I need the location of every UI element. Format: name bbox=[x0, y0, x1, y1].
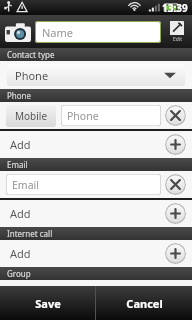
staticText: 13:39 bbox=[162, 1, 188, 15]
staticText: Phone bbox=[67, 109, 99, 123]
button[interactable]: Cancel bbox=[96, 286, 192, 320]
staticText: Add bbox=[10, 206, 31, 221]
button[interactable]: Email bbox=[6, 174, 161, 195]
staticText: Contact type bbox=[7, 49, 55, 60]
button[interactable]: Phone bbox=[61, 105, 161, 126]
button[interactable]: Add bbox=[0, 131, 192, 158]
staticText: Phone bbox=[15, 68, 49, 83]
button[interactable]: Add photo bbox=[0, 15, 35, 48]
staticText: Email bbox=[12, 178, 39, 192]
staticText: Group bbox=[7, 268, 31, 279]
button[interactable]: Phone bbox=[7, 64, 185, 86]
button[interactable]: Save bbox=[0, 286, 95, 320]
staticText: Edit bbox=[173, 36, 182, 43]
staticText: Mobile bbox=[15, 109, 48, 123]
button[interactable]: Mobile bbox=[6, 105, 56, 127]
button[interactable]: Edit bbox=[161, 15, 192, 48]
staticText: Internet call bbox=[7, 228, 53, 239]
button[interactable]: Add bbox=[165, 243, 186, 264]
button[interactable]: Remove bbox=[165, 174, 186, 195]
button[interactable]: Name bbox=[35, 21, 161, 43]
button[interactable]: Remove bbox=[165, 105, 186, 126]
staticText: Save bbox=[35, 296, 61, 311]
button[interactable]: Add bbox=[165, 203, 186, 224]
button[interactable]: Add bbox=[0, 240, 192, 267]
staticText: Name bbox=[42, 25, 74, 40]
staticText: Add bbox=[10, 137, 31, 152]
staticText: Add bbox=[10, 246, 31, 261]
staticText: Email bbox=[7, 159, 28, 170]
button[interactable]: Add bbox=[0, 200, 192, 227]
staticText: Cancel bbox=[126, 296, 163, 311]
button[interactable]: Add bbox=[165, 134, 186, 155]
staticText: Phone bbox=[7, 90, 32, 101]
